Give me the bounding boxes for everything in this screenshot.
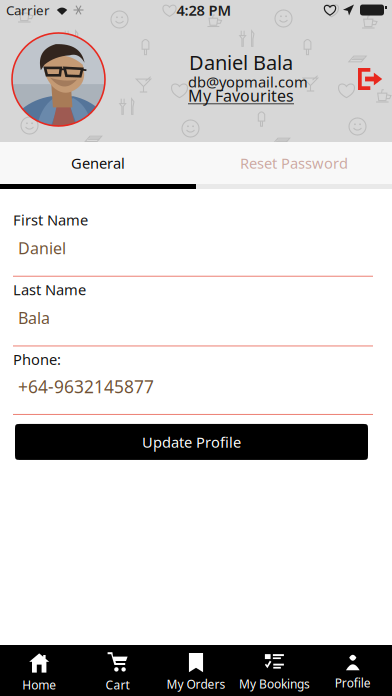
staticText: Phone: (13, 349, 61, 369)
staticText: Home (22, 677, 56, 693)
staticText: First Name (13, 210, 88, 229)
staticText: My Favourites (188, 85, 294, 106)
button[interactable]: General (0, 142, 196, 184)
staticText: Daniel Bala (189, 49, 293, 76)
button[interactable]: Log out (0, 0, 392, 142)
staticText: db@yopmail.com (188, 72, 308, 91)
staticText: Profile (335, 675, 371, 691)
staticText: +64-9632145877 (18, 375, 154, 398)
staticText: 4:28 PM (176, 0, 231, 20)
staticText: General (71, 153, 125, 173)
button[interactable]: Home (0, 645, 78, 696)
button[interactable]: Cart (78, 645, 157, 696)
staticText: Update Profile (142, 432, 241, 452)
staticText: Bala (18, 307, 50, 328)
button[interactable]: Update Profile (0, 424, 392, 460)
button[interactable]: Profile (314, 645, 392, 696)
staticText: My Bookings (239, 676, 310, 692)
staticText: Daniel (18, 237, 66, 259)
button[interactable]: My Orders (157, 645, 235, 696)
staticText: My Orders (166, 676, 225, 692)
staticText: Carrier (6, 1, 50, 19)
staticText: Reset Password (240, 153, 348, 173)
staticText: Cart (106, 677, 130, 693)
button[interactable]: My Bookings (235, 645, 314, 696)
button[interactable]: Reset Password (196, 142, 392, 184)
staticText: Last Name (13, 280, 86, 299)
